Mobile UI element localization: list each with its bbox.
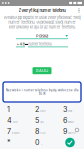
staticText: Zweryfikuj numer telefonu	[18, 8, 65, 13]
staticText: 0	[35, 138, 40, 147]
button[interactable]: 1	[0, 104, 28, 115]
staticText: PQRS	[12, 132, 20, 135]
staticText: 5	[35, 116, 39, 125]
staticText: 1	[7, 105, 10, 114]
staticText: Polska	[36, 34, 48, 38]
button[interactable]: 5	[28, 115, 56, 126]
staticText: JKL	[40, 121, 44, 124]
staticText: DALEJ	[36, 68, 48, 73]
staticText: Nazwisko i numer telefonu będą widoczne …	[5, 88, 78, 96]
button[interactable]: DALEJ	[32, 67, 51, 74]
button[interactable]: 7	[0, 126, 28, 137]
button[interactable]: Polska	[16, 33, 68, 39]
staticText: TUV	[40, 132, 46, 135]
staticText: 6	[63, 116, 67, 125]
button[interactable]: More options	[76, 6, 82, 15]
staticText: *	[7, 138, 11, 147]
staticText: 8	[35, 127, 39, 136]
button[interactable]: 8	[28, 126, 56, 137]
staticText: 9	[63, 127, 67, 136]
button[interactable]: 3	[56, 104, 84, 115]
staticText: 2	[35, 105, 39, 114]
staticText: WXYZ	[68, 132, 76, 135]
button[interactable]: Backspace	[72, 126, 82, 134]
staticText: DEF	[68, 110, 72, 113]
staticText: GHI	[13, 121, 18, 124]
button[interactable]: 6	[56, 115, 84, 126]
staticText: WhatsApp będzie musiał zweryfikować Twój…	[3, 15, 80, 29]
button[interactable]: 4	[0, 115, 28, 126]
button[interactable]: Done	[56, 137, 84, 148]
staticText: ABC	[40, 110, 46, 113]
button[interactable]: 0	[28, 137, 56, 148]
staticText: 7	[7, 127, 11, 136]
button[interactable]: *	[0, 137, 28, 148]
staticText: MNO	[68, 121, 74, 124]
button[interactable]: 2	[28, 104, 56, 115]
staticText: 3	[63, 105, 67, 114]
staticText: 4	[7, 116, 12, 125]
staticText: numer telefonu	[28, 42, 52, 46]
button[interactable]: 9	[56, 126, 84, 137]
staticText: +	[41, 143, 43, 146]
staticText: +48	[16, 42, 24, 46]
